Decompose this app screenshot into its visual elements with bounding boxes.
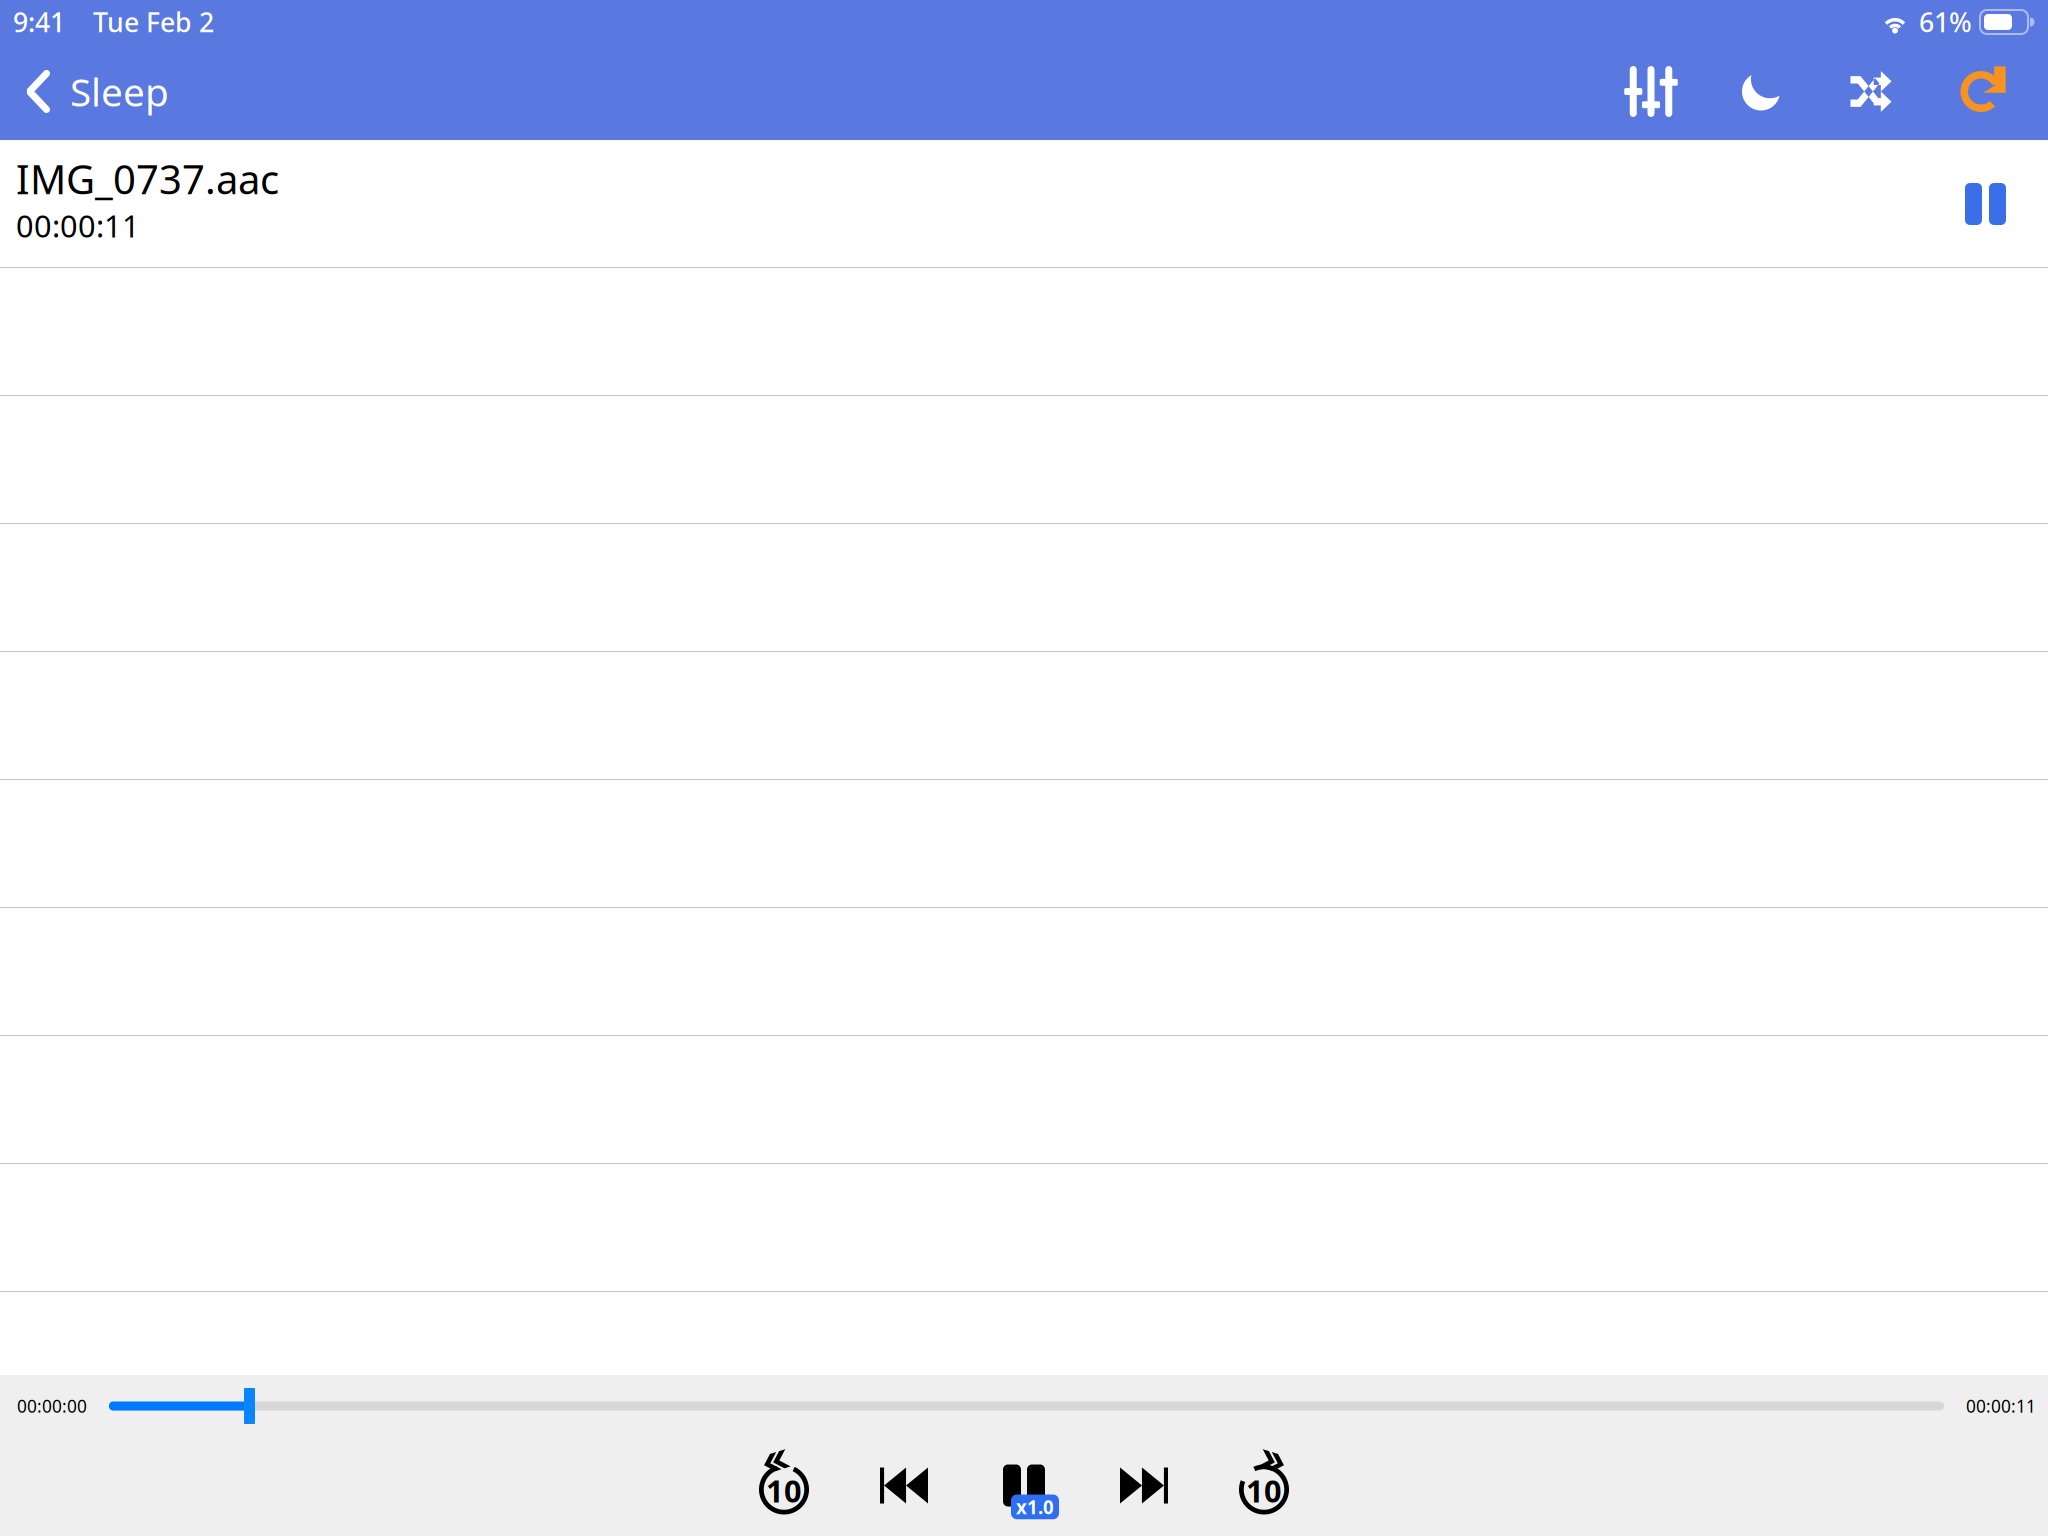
button[interactable]: Pause	[978, 1439, 1070, 1531]
button[interactable]: Skip back 10 seconds	[738, 1439, 830, 1531]
button[interactable]: Repeat	[1926, 43, 2036, 139]
staticText: x1.0	[1016, 1494, 1054, 1519]
button[interactable]: IMG_0737.aac	[0, 140, 2048, 268]
staticText: 9:41	[13, 4, 65, 40]
staticText: 00:00:11	[1966, 1394, 2036, 1417]
button[interactable]: Equalizer	[1596, 43, 1706, 139]
staticText: Sleep	[70, 66, 169, 117]
staticText: 00:00:11	[16, 205, 140, 246]
staticText: 10	[1246, 1470, 1282, 1511]
button[interactable]: Sleep timer	[1706, 43, 1816, 139]
staticText: IMG_0737.aac	[16, 152, 279, 205]
button[interactable]: Skip forward 10 seconds	[1218, 1439, 1310, 1531]
button[interactable]: Next track	[1098, 1439, 1190, 1531]
button[interactable]: Sleep	[0, 43, 187, 139]
button[interactable]: Previous track	[858, 1439, 950, 1531]
staticText: 00:00:00	[17, 1394, 87, 1417]
staticText: Tue Feb 2	[93, 4, 214, 40]
staticText: 10	[766, 1470, 802, 1511]
staticText: 61%	[1919, 4, 1972, 40]
button[interactable]: Shuffle	[1816, 43, 1926, 139]
